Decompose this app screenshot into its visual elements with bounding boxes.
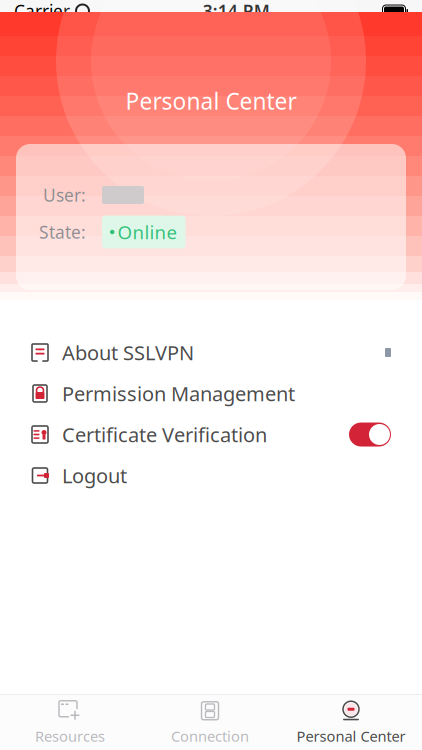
staticText: Permission Management	[62, 380, 295, 407]
button[interactable]: Resources	[0, 695, 140, 750]
staticText: User:	[43, 183, 86, 206]
button[interactable]: Permission Management	[0, 373, 422, 414]
staticText: 3:14 PM	[203, 0, 270, 22]
staticText: Certificate Verification	[62, 421, 267, 448]
staticText: Logout	[62, 462, 127, 489]
staticText: State:	[39, 220, 86, 243]
staticText: Connection	[171, 726, 249, 746]
button[interactable]: Personal Center	[280, 695, 422, 750]
button[interactable]: Connection	[140, 695, 280, 750]
staticText: About SSLVPN	[62, 339, 194, 366]
button[interactable]: Logout	[0, 455, 422, 496]
button[interactable]: Certificate Verification	[0, 414, 422, 455]
staticText: Online	[117, 220, 177, 244]
button[interactable]: About SSLVPN	[0, 332, 422, 373]
staticText: Resources	[35, 726, 105, 746]
staticText: Personal Center	[125, 86, 296, 116]
staticText: Personal Center	[296, 726, 405, 746]
staticText: Carrier	[14, 0, 70, 22]
